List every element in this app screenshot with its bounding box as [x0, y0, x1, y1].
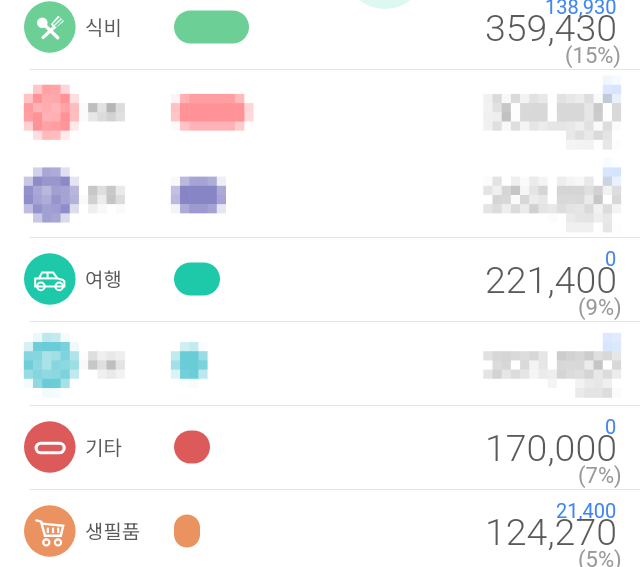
button[interactable]: 의료	[0, 321, 640, 405]
button[interactable]: 생필품	[0, 489, 640, 567]
button[interactable]: 기타	[0, 405, 640, 489]
button[interactable]: 여행	[0, 237, 640, 321]
button[interactable]: 의류	[0, 69, 640, 153]
button[interactable]: 문화	[0, 153, 640, 237]
button[interactable]: 식비	[0, 0, 640, 69]
